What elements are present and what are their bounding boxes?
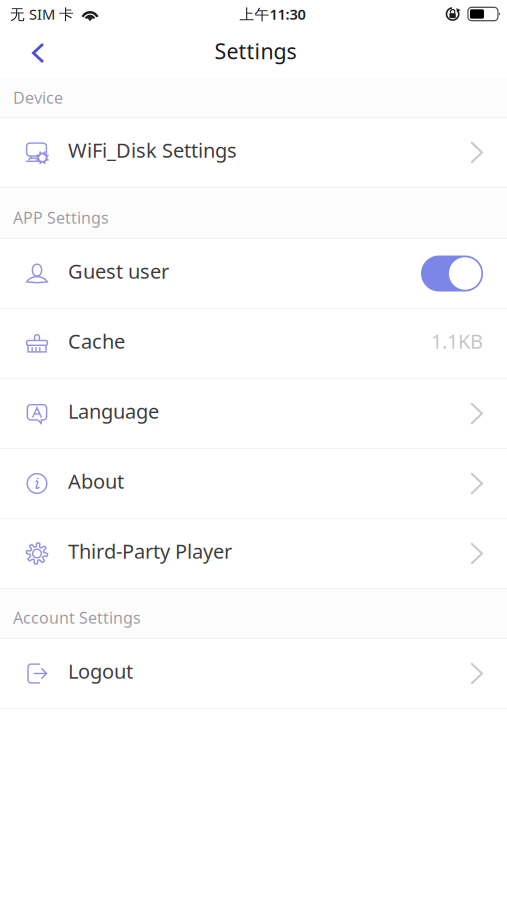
staticText: 无 SIM 卡 bbox=[10, 4, 74, 24]
button[interactable]: Third-Party Player bbox=[0, 519, 507, 588]
staticText: Guest user bbox=[68, 258, 169, 284]
staticText: Logout bbox=[68, 658, 133, 684]
button[interactable]: Guest user bbox=[421, 255, 483, 291]
button[interactable]: About bbox=[0, 449, 507, 518]
button[interactable]: Back bbox=[0, 28, 62, 78]
button[interactable]: Cache bbox=[0, 309, 507, 378]
staticText: Cache bbox=[68, 328, 125, 354]
staticText: 上午11:30 bbox=[239, 4, 305, 24]
button[interactable]: Language bbox=[0, 379, 507, 448]
staticText: 1.1KB bbox=[431, 328, 483, 354]
staticText: Third-Party Player bbox=[68, 538, 232, 564]
button[interactable]: Logout bbox=[0, 639, 507, 708]
staticText: Language bbox=[68, 398, 159, 424]
staticText: About bbox=[68, 468, 124, 494]
button[interactable]: WiFi_Disk Settings bbox=[0, 118, 507, 187]
staticText: Device bbox=[13, 87, 63, 108]
staticText: APP Settings bbox=[13, 207, 109, 228]
staticText: WiFi_Disk Settings bbox=[68, 137, 237, 163]
staticText: Settings bbox=[214, 37, 296, 65]
staticText: Account Settings bbox=[13, 607, 141, 628]
